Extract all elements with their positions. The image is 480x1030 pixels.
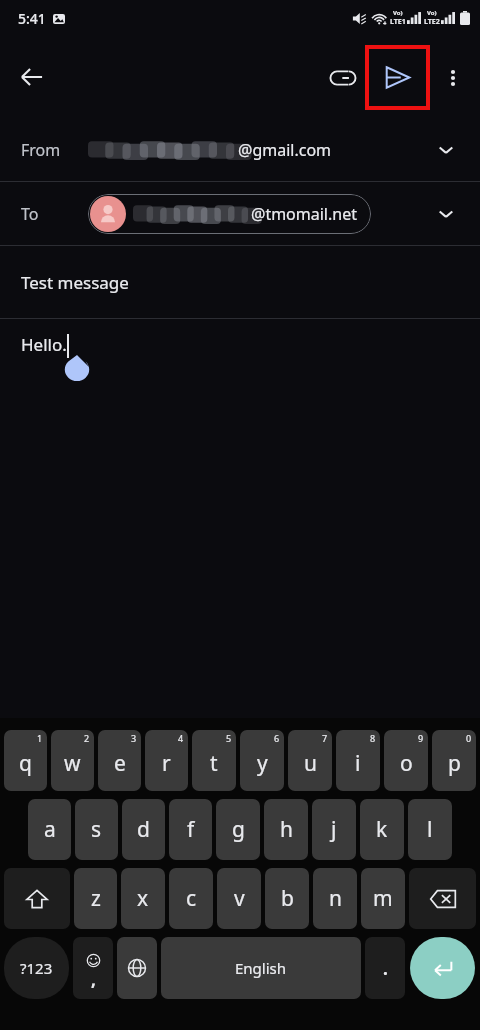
staticText: @tmomail.net [251,203,357,225]
staticText: d [137,815,150,844]
button[interactable]: 7 [288,730,332,791]
button[interactable]: a [28,799,71,860]
staticText: 6 [274,732,280,744]
button[interactable]: Enter [410,937,475,999]
button[interactable]: English [161,937,361,999]
button[interactable]: Backspace [409,868,476,929]
button[interactable]: 8 [336,730,380,791]
button[interactable]: . [365,937,405,999]
button[interactable]: d [122,799,165,860]
staticText: n [329,884,342,913]
staticText: Vo) [427,9,437,17]
staticText: 7 [322,732,328,744]
staticText: 1 [37,732,43,744]
staticText: English [235,958,287,978]
staticText: t [210,749,218,778]
button[interactable]: Emoji and comma [73,937,113,999]
button[interactable]: x [121,868,165,929]
button[interactable]: b [265,868,309,929]
staticText: k [376,815,388,844]
staticText: x [137,884,149,913]
button[interactable]: v [217,868,261,929]
button[interactable]: l [408,799,452,860]
staticText: 5 [226,732,232,744]
button[interactable]: Test message [0,246,480,318]
button[interactable]: Send [365,45,430,110]
button[interactable]: j [312,799,356,860]
staticText: 4 [178,732,184,744]
staticText: f [187,815,195,844]
button[interactable]: 1 [4,730,47,791]
button[interactable]: 0 [432,730,476,791]
button[interactable]: c [169,868,213,929]
staticText: 2 [84,732,90,744]
button[interactable]: h [264,799,308,860]
staticText: 3 [131,732,137,744]
staticText: LTE1 [390,17,406,27]
staticText: s [91,815,102,844]
button[interactable]: n [313,868,357,929]
staticText: w [64,749,81,778]
staticText: From [21,139,61,161]
staticText: h [280,815,293,844]
button[interactable]: f [169,799,212,860]
button[interactable]: Expand From [426,130,466,170]
staticText: , [91,968,96,991]
staticText: a [44,815,56,844]
staticText: z [91,884,101,913]
button[interactable]: ?123 [4,937,69,999]
staticText: c [186,884,197,913]
staticText: To [21,203,39,225]
button[interactable]: 3 [98,730,141,791]
staticText: p [448,749,461,778]
staticText: 9 [418,732,424,744]
button[interactable]: 5 [192,730,236,791]
button[interactable]: More options [430,55,476,101]
staticText: Hello. [21,333,67,356]
button[interactable]: Expand To [426,194,466,234]
button[interactable]: 4 [145,730,188,791]
button[interactable]: Hello. [0,319,480,718]
staticText: e [114,749,126,778]
staticText: j [331,815,337,844]
staticText: q [19,749,32,778]
staticText: o [400,749,413,778]
staticText: ?123 [20,958,53,978]
staticText: i [355,749,361,778]
button[interactable]: 6 [240,730,284,791]
staticText: @gmail.com [238,139,332,161]
staticText: m [373,884,393,913]
button[interactable]: From [0,118,480,181]
staticText: g [232,815,245,844]
button[interactable]: Attach file [317,54,365,102]
staticText: Vo) [393,9,403,17]
button[interactable]: k [360,799,404,860]
staticText: u [304,749,317,778]
button[interactable]: g [216,799,260,860]
staticText: v [234,884,245,913]
staticText: 0 [466,732,472,744]
staticText: y [257,749,268,778]
button[interactable]: z [74,868,117,929]
button[interactable]: 9 [384,730,428,791]
button[interactable]: s [75,799,118,860]
staticText: . [383,957,388,980]
staticText: l [427,815,433,844]
button[interactable]: m [361,868,405,929]
staticText: Test message [21,271,129,294]
button[interactable]: To [0,182,480,245]
staticText: b [281,884,294,913]
staticText: LTE2 [424,17,440,27]
staticText: r [162,749,171,778]
staticText: 8 [370,732,376,744]
button[interactable]: Change language [117,937,157,999]
button[interactable]: Shift [4,868,70,929]
staticText: 5:41 [18,9,46,28]
button[interactable]: 2 [51,730,94,791]
button[interactable]: Back [8,53,56,101]
